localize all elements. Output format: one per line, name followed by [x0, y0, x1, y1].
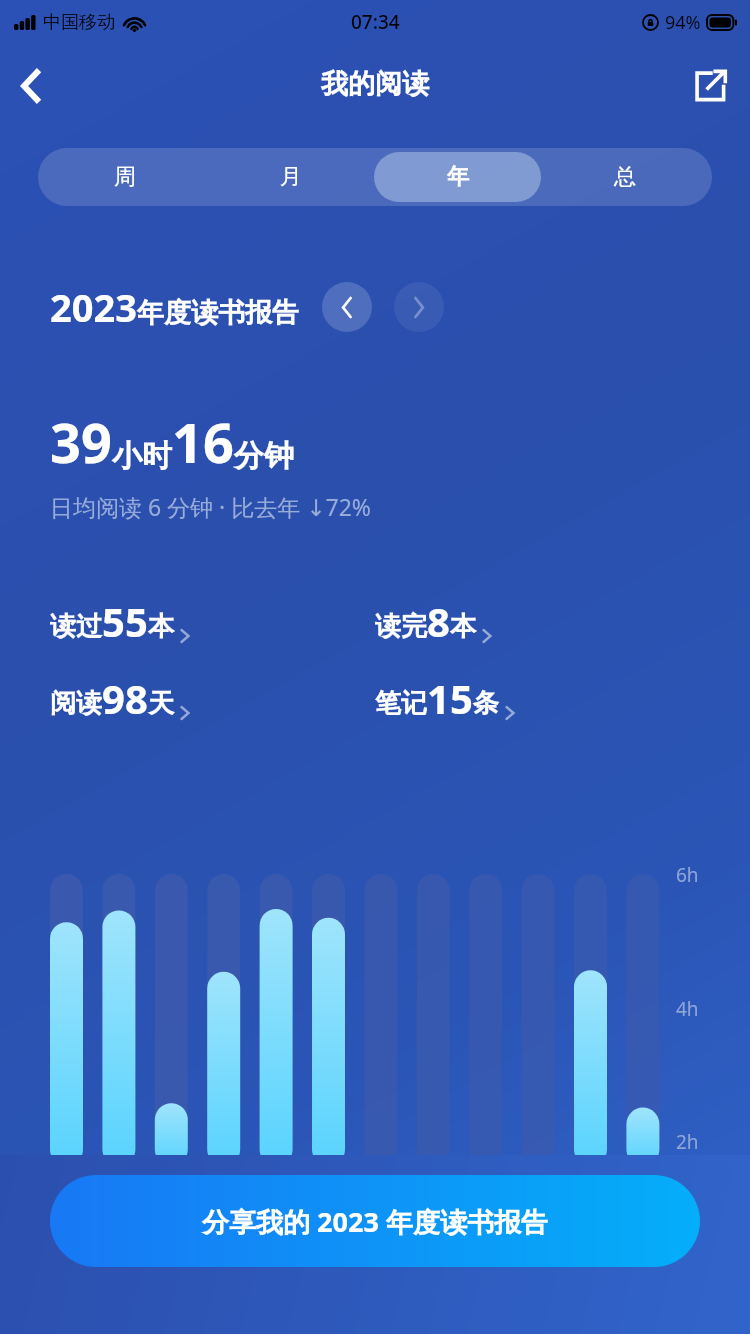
staticText: 总 — [614, 163, 636, 191]
staticText: 98 — [102, 671, 148, 725]
staticText: 周 — [114, 163, 136, 191]
button[interactable]: 读完 — [375, 592, 700, 648]
staticText: 16 — [172, 405, 234, 479]
button[interactable]: Share — [682, 58, 738, 114]
staticText: 15 — [427, 671, 473, 725]
staticText: 日均阅读 6 分钟 · 比去年 ↓72% — [50, 491, 371, 522]
staticText: 39 — [50, 405, 112, 479]
staticText: 天 — [148, 687, 174, 720]
staticText: 2023 — [50, 281, 137, 333]
button[interactable]: 月 — [208, 152, 374, 202]
staticText: 读过 — [50, 610, 102, 643]
staticText: 笔记 — [375, 687, 427, 720]
staticText: 2h — [676, 1129, 699, 1155]
staticText: 年度读书报告 — [137, 296, 299, 330]
staticText: 6h — [676, 862, 699, 888]
staticText: 8 — [427, 594, 450, 648]
button[interactable]: 总 — [541, 152, 708, 202]
staticText: 小时 — [112, 437, 172, 475]
staticText: 本 — [148, 610, 174, 643]
staticText: 4h — [676, 996, 699, 1022]
staticText: 分享我的 2023 年度读书报告 — [202, 1203, 548, 1240]
button[interactable]: 笔记 — [375, 669, 700, 725]
button[interactable]: 分享我的 2023 年度读书报告 — [50, 1175, 700, 1267]
button[interactable]: 读过 — [50, 592, 375, 648]
staticText: 年 — [447, 163, 469, 191]
staticText: 本 — [450, 610, 476, 643]
staticText: 阅读 — [50, 687, 102, 720]
button[interactable]: 阅读 — [50, 669, 375, 725]
staticText: 读完 — [375, 610, 427, 643]
staticText: 条 — [473, 687, 499, 720]
button[interactable]: Next year — [394, 282, 444, 332]
button[interactable]: Back — [4, 58, 60, 114]
staticText: 我的阅读 — [321, 67, 429, 101]
staticText: 07:34 — [351, 9, 400, 35]
staticText: 中国移动 — [43, 11, 115, 34]
button[interactable]: 周 — [42, 152, 208, 202]
staticText: 55 — [102, 594, 148, 648]
staticText: 分钟 — [234, 437, 294, 475]
staticText: 94% — [665, 10, 701, 35]
staticText: 月 — [280, 163, 302, 191]
button[interactable]: 年 — [374, 152, 541, 202]
button[interactable]: Previous year — [322, 282, 372, 332]
